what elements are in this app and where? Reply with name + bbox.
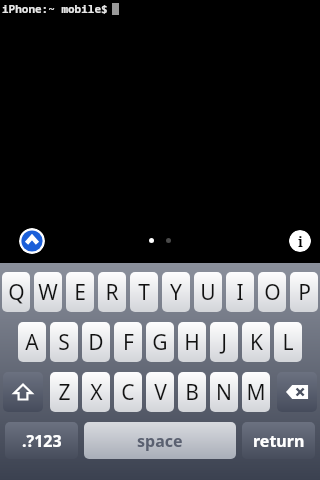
staticText: V bbox=[154, 378, 167, 407]
staticText: O bbox=[264, 278, 281, 307]
staticText: space bbox=[137, 430, 183, 452]
button[interactable]: V bbox=[146, 372, 174, 412]
button[interactable]: J bbox=[210, 322, 238, 362]
button[interactable]: D bbox=[82, 322, 110, 362]
button[interactable]: C bbox=[114, 372, 142, 412]
staticText: N bbox=[216, 378, 232, 407]
staticText: X bbox=[90, 378, 103, 407]
staticText: P bbox=[298, 278, 311, 307]
button[interactable]: Scroll up bbox=[19, 228, 45, 254]
button[interactable]: P bbox=[290, 272, 318, 312]
button[interactable]: R bbox=[98, 272, 126, 312]
button[interactable]: space bbox=[84, 422, 236, 459]
staticText: i bbox=[298, 232, 303, 251]
button[interactable]: .?123 bbox=[5, 422, 78, 459]
button[interactable]: Info bbox=[289, 230, 311, 252]
staticText: J bbox=[221, 328, 227, 357]
button[interactable]: N bbox=[210, 372, 238, 412]
staticText: return bbox=[253, 430, 305, 452]
button[interactable]: Q bbox=[2, 272, 30, 312]
staticText: iPhone:~ mobile$ bbox=[2, 1, 108, 16]
button[interactable]: X bbox=[82, 372, 110, 412]
button[interactable]: L bbox=[274, 322, 302, 362]
button[interactable]: Z bbox=[50, 372, 78, 412]
button[interactable]: G bbox=[146, 322, 174, 362]
button[interactable]: B bbox=[178, 372, 206, 412]
button[interactable]: W bbox=[34, 272, 62, 312]
button[interactable]: return bbox=[242, 422, 315, 459]
button[interactable]: Y bbox=[162, 272, 190, 312]
button[interactable]: E bbox=[66, 272, 94, 312]
staticText: I bbox=[236, 278, 244, 307]
button[interactable]: H bbox=[178, 322, 206, 362]
button[interactable]: I bbox=[226, 272, 254, 312]
staticText: H bbox=[184, 328, 200, 357]
staticText: W bbox=[38, 278, 58, 307]
staticText: D bbox=[88, 328, 104, 357]
staticText: Q bbox=[8, 278, 25, 307]
staticText: A bbox=[25, 328, 39, 357]
staticText: M bbox=[246, 378, 266, 407]
staticText: L bbox=[282, 328, 294, 357]
button[interactable]: S bbox=[50, 322, 78, 362]
staticText: B bbox=[185, 378, 199, 407]
staticText: R bbox=[105, 278, 119, 307]
staticText: K bbox=[250, 328, 263, 357]
staticText: C bbox=[121, 378, 135, 407]
button[interactable]: Backspace bbox=[277, 372, 317, 412]
staticText: Z bbox=[58, 378, 71, 407]
staticText: E bbox=[74, 278, 86, 307]
button[interactable]: F bbox=[114, 322, 142, 362]
staticText: U bbox=[200, 278, 216, 307]
button[interactable]: O bbox=[258, 272, 286, 312]
staticText: S bbox=[58, 328, 70, 357]
button[interactable]: U bbox=[194, 272, 222, 312]
staticText: Y bbox=[170, 278, 182, 307]
staticText: .?123 bbox=[22, 430, 62, 452]
staticText: G bbox=[152, 328, 168, 357]
button[interactable]: Shift bbox=[3, 372, 43, 412]
button[interactable]: T bbox=[130, 272, 158, 312]
button[interactable]: A bbox=[18, 322, 46, 362]
button[interactable]: M bbox=[242, 372, 270, 412]
button[interactable]: K bbox=[242, 322, 270, 362]
staticText: T bbox=[138, 278, 150, 307]
staticText: F bbox=[123, 328, 134, 357]
